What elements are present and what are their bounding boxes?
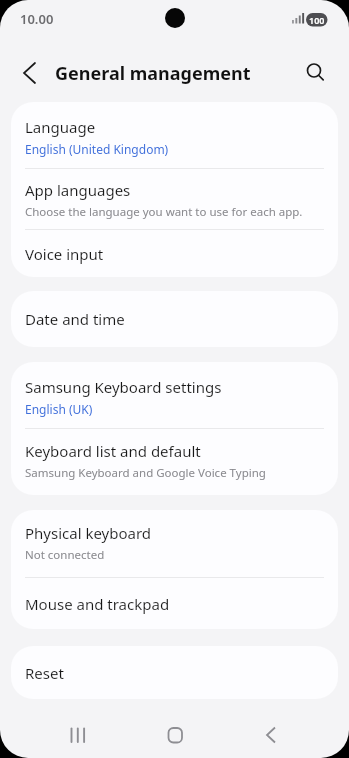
button[interactable] bbox=[255, 719, 287, 751]
button[interactable] bbox=[62, 719, 94, 751]
staticText: Date and time bbox=[25, 309, 125, 329]
staticText: Samsung Keyboard settings bbox=[25, 377, 222, 397]
button[interactable]: App languages bbox=[11, 169, 338, 229]
staticText: Language bbox=[25, 117, 96, 137]
button[interactable]: Samsung Keyboard settings bbox=[11, 362, 338, 428]
button[interactable]: Physical keyboard bbox=[11, 510, 338, 577]
staticText: App languages bbox=[25, 180, 131, 200]
staticText: 10.00 bbox=[20, 10, 54, 28]
button[interactable]: Keyboard list and default bbox=[11, 429, 338, 495]
staticText: 100 bbox=[309, 14, 325, 26]
staticText: Reset bbox=[25, 663, 64, 683]
staticText: Voice input bbox=[25, 244, 104, 264]
button[interactable] bbox=[301, 58, 331, 88]
button[interactable]: Reset bbox=[11, 646, 338, 699]
button[interactable]: Voice input bbox=[11, 230, 338, 277]
staticText: Samsung Keyboard and Google Voice Typing bbox=[25, 465, 266, 481]
button[interactable] bbox=[159, 719, 191, 751]
staticText: Physical keyboard bbox=[25, 523, 152, 543]
button[interactable]: Date and time bbox=[11, 291, 338, 347]
staticText: Not connected bbox=[25, 547, 105, 563]
staticText: English (United Kingdom) bbox=[25, 141, 169, 157]
button[interactable]: Language bbox=[11, 102, 338, 168]
staticText: Keyboard list and default bbox=[25, 441, 201, 461]
button[interactable] bbox=[14, 58, 44, 88]
staticText: Choose the language you want to use for … bbox=[25, 204, 303, 220]
staticText: Mouse and trackpad bbox=[25, 594, 170, 614]
staticText: General management bbox=[55, 61, 251, 86]
button[interactable]: Mouse and trackpad bbox=[11, 578, 338, 629]
staticText: English (UK) bbox=[25, 401, 93, 417]
